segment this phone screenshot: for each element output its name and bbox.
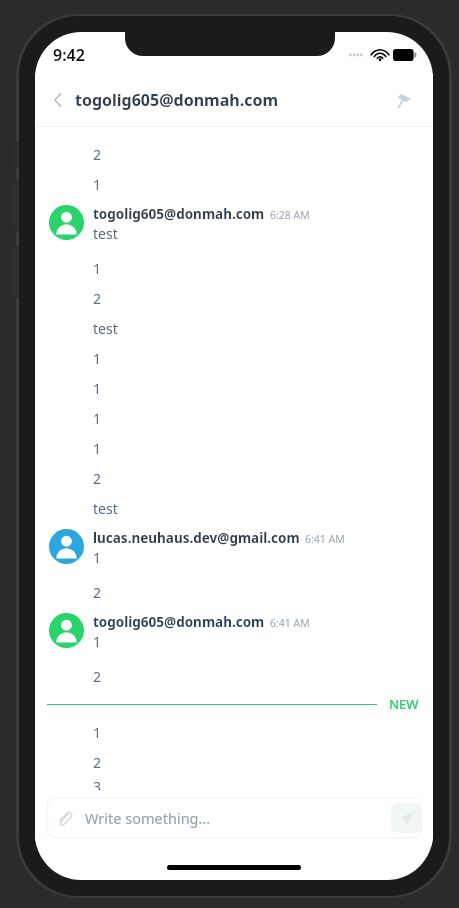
staticText: 1 xyxy=(93,548,102,567)
button[interactable]: Attach file xyxy=(47,798,421,838)
staticText: 1 xyxy=(93,439,102,458)
staticText: togolig605@donmah.com xyxy=(93,205,265,223)
button[interactable]: 2 xyxy=(35,283,433,313)
staticText: 2 xyxy=(93,667,102,686)
staticText: Write something... xyxy=(85,808,391,828)
button[interactable]: togolig605@donmah.com xyxy=(35,199,433,253)
button[interactable]: Send xyxy=(391,803,421,833)
staticText: 3 xyxy=(93,777,102,790)
button[interactable]: Pin conversation xyxy=(387,84,419,116)
button[interactable]: 2 xyxy=(35,577,433,607)
staticText: test xyxy=(93,499,118,518)
staticText: 1 xyxy=(93,632,102,651)
staticText: 2 xyxy=(93,469,102,488)
staticText: test xyxy=(93,319,118,338)
staticText: 9:42 xyxy=(53,44,85,66)
button[interactable]: test xyxy=(35,313,433,343)
button[interactable]: 1 xyxy=(35,343,433,373)
button[interactable]: 1 xyxy=(35,373,433,403)
button[interactable]: 2 xyxy=(35,463,433,493)
staticText: test xyxy=(93,224,118,243)
button[interactable]: togolig605@donmah.com xyxy=(75,89,387,111)
staticText: 2 xyxy=(93,289,102,308)
staticText: 1 xyxy=(93,379,102,398)
button[interactable]: Attach file xyxy=(47,801,81,835)
staticText: 1 xyxy=(93,175,102,194)
button[interactable]: Back xyxy=(41,83,75,117)
staticText: 6:28 AM xyxy=(270,208,310,222)
button[interactable]: 1 xyxy=(35,403,433,433)
staticText: 1 xyxy=(93,259,102,278)
button[interactable]: 2 xyxy=(35,661,433,691)
staticText: togolig605@donmah.com xyxy=(93,613,265,631)
button[interactable]: 1 xyxy=(35,253,433,283)
staticText: 1 xyxy=(93,723,102,742)
staticText: 2 xyxy=(93,753,102,772)
button[interactable]: 1 xyxy=(35,433,433,463)
button[interactable]: lucas.neuhaus.dev@gmail.com xyxy=(35,523,433,577)
button[interactable]: 1 xyxy=(35,717,433,747)
button[interactable]: 3 xyxy=(35,777,433,790)
staticText: 1 xyxy=(93,409,102,428)
button[interactable]: 2 xyxy=(35,747,433,777)
staticText: 2 xyxy=(93,145,102,164)
button[interactable]: togolig605@donmah.com xyxy=(35,607,433,661)
staticText: 1 xyxy=(93,349,102,368)
button[interactable]: test xyxy=(35,493,433,523)
button[interactable]: 1 xyxy=(35,169,433,199)
staticText: 6:41 AM xyxy=(305,532,345,546)
staticText: 2 xyxy=(93,583,102,602)
button[interactable]: 2 xyxy=(35,139,433,169)
staticText: lucas.neuhaus.dev@gmail.com xyxy=(93,529,300,547)
staticText: NEW xyxy=(389,695,419,713)
staticText: 6:41 AM xyxy=(270,616,310,630)
